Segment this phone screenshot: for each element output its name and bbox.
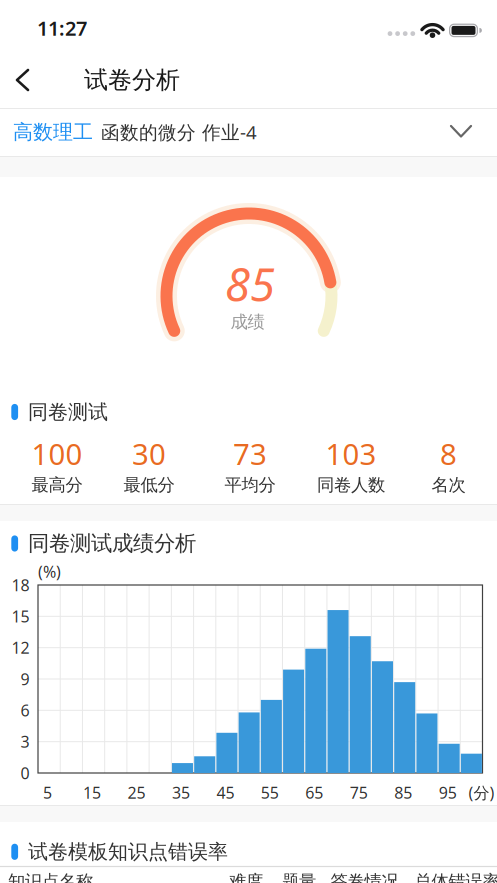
staticText: 名次	[431, 474, 465, 496]
staticText: 0	[21, 762, 30, 784]
staticText: 同卷测试	[28, 400, 108, 424]
staticText: 3	[21, 731, 30, 752]
staticText: 答卷情况	[330, 871, 398, 883]
staticText: 85	[394, 782, 412, 803]
staticText: 8	[440, 434, 457, 473]
staticText: 35	[172, 782, 190, 803]
staticText: 总体错误率	[414, 871, 497, 883]
staticText: 12	[12, 637, 30, 658]
staticText: 11:27	[37, 15, 87, 41]
staticText: 9	[21, 668, 30, 690]
staticText: 45	[216, 782, 234, 803]
staticText: 知识点名称	[8, 871, 93, 883]
staticText: 试卷分析	[84, 65, 180, 95]
staticText: 30	[132, 434, 166, 473]
staticText: 75	[350, 782, 368, 803]
staticText: 同卷人数	[317, 474, 385, 496]
button[interactable]: 切换试卷	[0, 110, 497, 156]
staticText: 难度	[229, 871, 263, 883]
staticText: 高数理工	[13, 120, 93, 144]
staticText: 103	[325, 434, 376, 473]
staticText: 最低分	[123, 474, 174, 496]
staticText: 5	[43, 782, 52, 803]
staticText: 95	[439, 782, 457, 803]
staticText: (分)	[468, 782, 494, 803]
staticText: 成绩	[230, 311, 264, 333]
staticText: (%)	[38, 561, 61, 582]
staticText: 100	[31, 434, 82, 473]
staticText: 25	[127, 782, 145, 803]
button[interactable]: 返回	[0, 58, 44, 102]
staticText: 6	[21, 700, 30, 721]
staticText: 15	[12, 606, 30, 627]
staticText: 65	[305, 782, 323, 803]
staticText: 73	[233, 434, 267, 473]
staticText: 55	[261, 782, 279, 803]
staticText: 函数的微分 作业-4	[101, 120, 257, 144]
staticText: 同卷测试成绩分析	[28, 530, 196, 557]
staticText: 85	[225, 254, 275, 314]
staticText: 题量	[282, 871, 316, 883]
staticText: 15	[83, 782, 101, 803]
staticText: 18	[12, 574, 30, 596]
staticText: 试卷模板知识点错误率	[28, 839, 228, 864]
staticText: 最高分	[31, 474, 82, 496]
staticText: 平均分	[224, 474, 275, 496]
